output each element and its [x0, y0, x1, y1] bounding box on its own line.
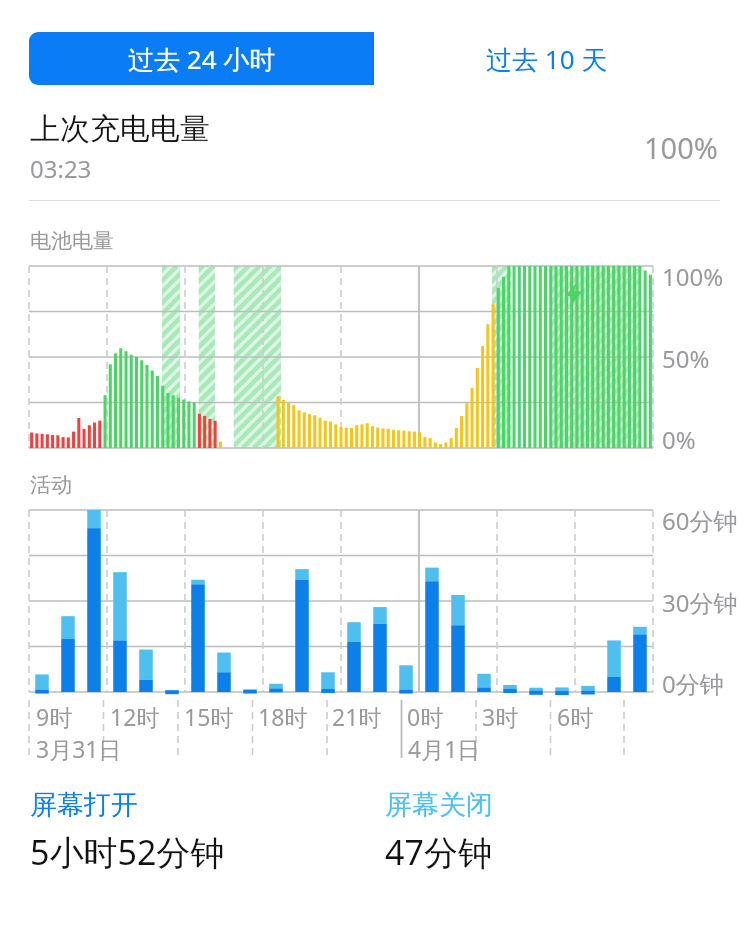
staticText: 6时: [557, 701, 594, 732]
staticText: 屏幕打开: [30, 788, 138, 822]
staticText: 47分钟: [385, 829, 492, 875]
button[interactable]: 屏幕关闭: [385, 788, 493, 875]
staticText: 电池电量: [30, 228, 114, 254]
button[interactable]: 屏幕打开: [30, 788, 385, 875]
staticText: 上次充电电量: [30, 110, 210, 148]
staticText: 03:23: [30, 152, 92, 185]
staticText: 50%: [662, 342, 710, 375]
staticText: 100%: [644, 128, 718, 167]
staticText: 过去 24 小时: [128, 41, 276, 77]
staticText: 活动: [30, 472, 72, 498]
staticText: 4月1日: [408, 733, 481, 764]
staticText: 15时: [184, 701, 234, 732]
staticText: 30分钟: [662, 586, 738, 619]
staticText: 0%: [662, 423, 696, 456]
staticText: 过去 10 天: [486, 41, 608, 77]
staticText: 3月31日: [36, 733, 122, 764]
staticText: 0分钟: [662, 667, 724, 700]
staticText: 9时: [36, 701, 73, 732]
staticText: 60分钟: [662, 504, 738, 537]
staticText: 100%: [662, 260, 724, 293]
staticText: 5小时52分钟: [30, 829, 225, 875]
button[interactable]: 过去 10 天: [374, 32, 720, 85]
button[interactable]: 过去 24 小时: [29, 32, 374, 85]
staticText: 21时: [332, 701, 382, 732]
staticText: 18时: [258, 701, 308, 732]
staticText: 0时: [407, 701, 444, 732]
staticText: 3时: [482, 701, 519, 732]
staticText: 屏幕关闭: [385, 788, 493, 822]
staticText: 12时: [110, 701, 160, 732]
